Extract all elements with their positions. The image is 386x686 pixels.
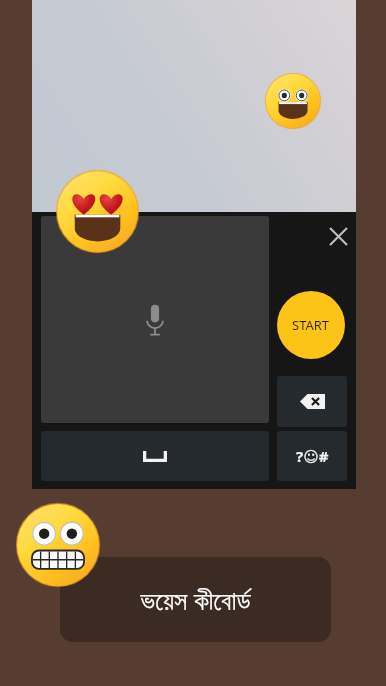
staticText: ভয়েস কীবোর্ড — [140, 582, 251, 617]
button[interactable]: START — [277, 291, 345, 359]
staticText: ?☺# — [296, 446, 329, 466]
button[interactable]: ভয়েস কীবোর্ড — [60, 557, 331, 642]
button[interactable]: Voice input — [41, 216, 269, 423]
button[interactable]: Close keyboard — [320, 218, 356, 254]
button[interactable]: Space — [41, 431, 269, 481]
button[interactable]: ?☺# — [277, 431, 347, 481]
staticText: START — [292, 316, 330, 334]
button[interactable]: Backspace — [277, 376, 347, 427]
